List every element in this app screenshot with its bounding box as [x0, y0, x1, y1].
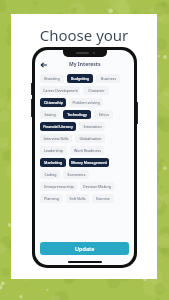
staticText: Business	[101, 76, 116, 81]
button[interactable]: Interview Skills	[40, 134, 72, 143]
staticText: Citizenship	[44, 100, 63, 105]
staticText: Work Readiness	[74, 148, 101, 153]
button[interactable]: Work Readiness	[70, 146, 104, 155]
button[interactable]: Leadership	[40, 146, 67, 155]
staticText: Innovation	[83, 124, 102, 129]
staticText: Money Management	[71, 160, 107, 165]
staticText: Leadership	[44, 148, 63, 153]
staticText: Budgeting	[71, 76, 89, 81]
staticText: Coding	[44, 172, 57, 177]
staticText: Branding	[44, 76, 60, 81]
staticText: Interview Skills	[43, 136, 69, 141]
staticText: Globalisation	[79, 136, 102, 141]
staticText: Saving	[44, 112, 56, 117]
button[interactable]: Economics	[63, 170, 89, 179]
button[interactable]: Globalisation	[75, 134, 105, 143]
button[interactable]: Soft Skills	[66, 194, 89, 203]
button[interactable]: Planning	[40, 194, 63, 203]
button[interactable]: Branding	[40, 74, 64, 83]
staticText: My Interests	[69, 61, 101, 68]
button[interactable]: Innovation	[79, 122, 105, 131]
staticText: Choose your interest!	[11, 25, 157, 65]
staticText: Decision Making	[83, 184, 111, 189]
button[interactable]: Budgeting	[67, 74, 93, 83]
button[interactable]: Money Management	[69, 158, 109, 167]
staticText: Planning	[44, 196, 59, 201]
button[interactable]: Update	[40, 242, 129, 255]
staticText: Update	[75, 245, 95, 252]
button[interactable]: Career Development	[40, 86, 80, 95]
button[interactable]: Character	[83, 86, 109, 95]
staticText: Ethics	[99, 112, 109, 117]
button[interactable]: Problem solving	[69, 98, 103, 107]
button[interactable]: Coding	[40, 170, 60, 179]
button[interactable]: Exercise	[92, 194, 114, 203]
staticText: Career Development	[43, 88, 78, 93]
staticText: Entrepreneurship	[44, 184, 74, 189]
button[interactable]: Business	[96, 74, 120, 83]
staticText: Character	[88, 88, 105, 93]
staticText: Economics	[67, 172, 86, 177]
button[interactable]: Financial Literacy	[40, 122, 76, 131]
button[interactable]: Ethics	[94, 110, 113, 119]
button[interactable]: Marketing	[40, 158, 66, 167]
staticText: Exercise	[96, 196, 110, 201]
button[interactable]: Citizenship	[40, 98, 66, 107]
button[interactable]: Saving	[40, 110, 60, 119]
button[interactable]: Back	[39, 60, 48, 69]
button[interactable]: Technology	[63, 110, 91, 119]
button[interactable]: Entrepreneurship	[40, 182, 77, 191]
staticText: Technology	[67, 112, 87, 117]
staticText: Problem solving	[72, 100, 100, 105]
staticText: Marketing	[44, 160, 62, 165]
button[interactable]: Decision Making	[80, 182, 114, 191]
staticText: Soft Skills	[69, 196, 86, 201]
staticText: Financial Literacy	[43, 124, 73, 129]
